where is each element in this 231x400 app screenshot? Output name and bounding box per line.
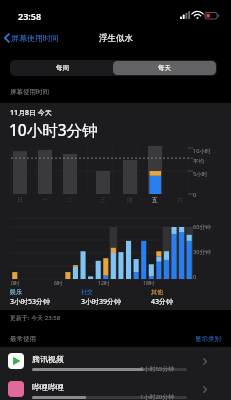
staticText: 二 xyxy=(67,196,73,203)
staticText: 更新于: 今天 23:58 xyxy=(10,314,61,322)
staticText: 腾讯视频 xyxy=(32,354,64,364)
staticText: 五 xyxy=(152,196,158,203)
staticText: 3小时53分钟 xyxy=(10,297,51,307)
staticText: 3小时39分钟 xyxy=(81,297,122,307)
button[interactable]: 哔哩哔哩 xyxy=(0,375,231,400)
staticText: 三 xyxy=(100,196,106,203)
staticText: 6时 xyxy=(54,279,63,286)
staticText: 0时 xyxy=(11,279,20,286)
staticText: 哔哩哔哩 xyxy=(32,382,64,392)
button[interactable]: 腾讯视频 xyxy=(0,347,231,375)
staticText: 最常使用 xyxy=(10,335,36,343)
button[interactable]: 每周 xyxy=(11,61,113,75)
staticText: 屏幕使用时间 xyxy=(10,88,49,96)
staticText: 5小时 xyxy=(193,170,231,178)
staticText: 屏幕使用时间 xyxy=(11,33,59,43)
button[interactable]: 屏幕使用时间 xyxy=(0,31,65,45)
staticText: 30分钟 xyxy=(193,248,231,256)
staticText: 六 xyxy=(177,196,183,203)
staticText: 娱乐 xyxy=(10,288,22,296)
staticText: 11月8日 今天 xyxy=(10,108,52,118)
staticText: 43分钟 xyxy=(151,297,174,307)
staticText: 四 xyxy=(127,196,133,203)
staticText: 日 xyxy=(17,196,23,203)
staticText: 每周 xyxy=(56,64,69,72)
staticText: 平均 xyxy=(193,158,231,165)
button[interactable]: 每天 xyxy=(113,61,216,75)
staticText: 18时 xyxy=(143,279,155,286)
staticText: 显示类别 xyxy=(195,335,221,343)
button[interactable]: 显示类别 xyxy=(195,335,221,343)
other: Details xyxy=(203,358,207,365)
staticText: 23:58 xyxy=(18,10,42,22)
staticText: 每天 xyxy=(158,64,171,72)
staticText: 社交 xyxy=(81,288,93,296)
staticText: 10小时 xyxy=(193,147,231,155)
staticText: 60分钟 xyxy=(193,223,231,231)
other: Details xyxy=(203,386,207,393)
staticText: 浮生似水 xyxy=(99,33,133,44)
staticText: 一 xyxy=(42,196,48,203)
staticText: 0 xyxy=(193,273,231,281)
staticText: 12时 xyxy=(98,279,110,286)
staticText: 其他 xyxy=(151,288,163,296)
staticText: 2小时55分钟 xyxy=(140,365,175,373)
staticText: 0 xyxy=(193,191,231,199)
staticText: 10小时3分钟 xyxy=(9,119,98,140)
staticText: 1小时20分钟 xyxy=(140,393,175,400)
